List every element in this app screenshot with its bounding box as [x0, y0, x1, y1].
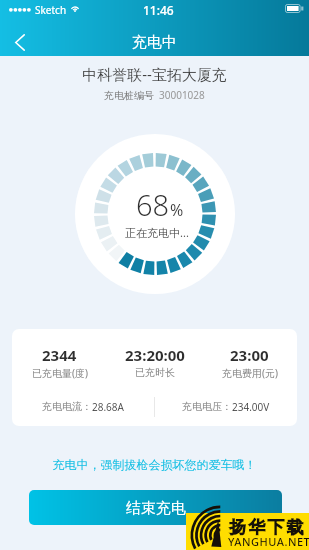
staticText: 扬华下载: [229, 517, 306, 538]
staticText: 充电中: [132, 33, 177, 52]
staticText: 正在充电中...: [125, 225, 189, 240]
staticText: %: [170, 199, 184, 221]
staticText: 充电电流：: [42, 400, 92, 413]
staticText: 充电费用(元): [222, 366, 278, 380]
staticText: 68: [136, 185, 170, 224]
staticText: 充电桩编号: [104, 89, 154, 102]
button[interactable]: Back: [0, 22, 40, 62]
staticText: 充电电压：: [182, 400, 232, 413]
staticText: YANGHUA.NET: [228, 534, 309, 549]
staticText: 11:46: [143, 2, 174, 18]
staticText: 已充时长: [135, 366, 175, 379]
staticText: 结束充电: [126, 499, 186, 518]
staticText: 充电中，强制拔枪会损坏您的爱车哦！: [0, 457, 309, 472]
staticText: 23:00: [230, 345, 269, 365]
staticText: 中科誉联--宝拓大厦充: [0, 64, 309, 84]
staticText: 28.68A: [92, 400, 124, 414]
staticText: 已充电量(度): [32, 366, 88, 380]
staticText: Sketch: [35, 3, 67, 17]
staticText: 23:20:00: [125, 345, 185, 365]
staticText: 30001028: [159, 88, 205, 102]
staticText: 234.00V: [232, 400, 270, 414]
button[interactable]: 结束充电: [29, 490, 282, 525]
staticText: 2344: [42, 345, 77, 365]
